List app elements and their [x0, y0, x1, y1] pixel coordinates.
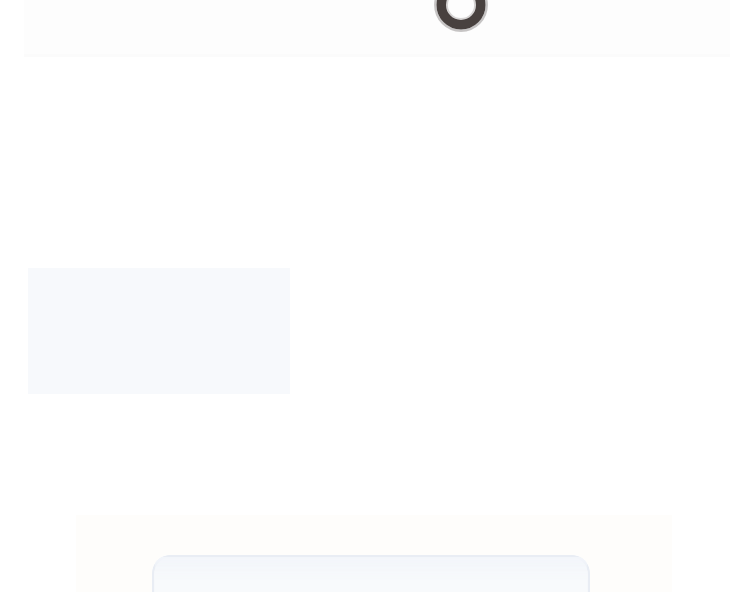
button[interactable]: Header [24, 0, 730, 57]
other: Loading [0, 0, 750, 592]
button[interactable]: Eyewear card [152, 555, 590, 592]
